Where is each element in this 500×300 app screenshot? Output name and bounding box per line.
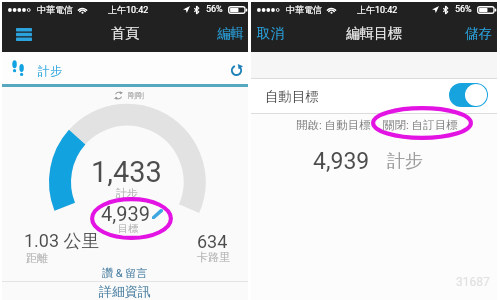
staticText: 計步 xyxy=(38,63,62,78)
staticText: 讚 & 留言 xyxy=(102,266,148,280)
button[interactable]: Auto goal toggle xyxy=(449,83,488,107)
staticText: 開啟: 自動目標 xyxy=(296,118,371,132)
staticText: 中華電信 xyxy=(37,4,73,15)
staticText: 634 xyxy=(197,231,228,252)
button[interactable]: Menu xyxy=(9,19,39,49)
staticText: 中華電信 xyxy=(286,4,322,15)
staticText: 取消 xyxy=(257,25,284,42)
button[interactable]: 儲存 xyxy=(459,18,497,49)
staticText: 56% xyxy=(206,4,223,15)
staticText: 56% xyxy=(455,4,472,15)
staticText: 自動目標 xyxy=(265,88,319,105)
staticText: 計步 xyxy=(116,186,138,200)
button[interactable]: 讚 & 留言 xyxy=(2,263,248,283)
staticText: 距離 xyxy=(26,251,48,265)
button[interactable]: 取消 xyxy=(251,18,290,49)
staticText: 1.03 公里 xyxy=(24,230,100,253)
staticText: 儲存 xyxy=(465,25,492,42)
button[interactable]: 詳細資訊 xyxy=(2,282,248,300)
staticText: 剛剛 xyxy=(128,90,144,100)
staticText: 卡路里 xyxy=(197,250,230,264)
staticText: 上午10:42 xyxy=(357,4,398,15)
staticText: 目標 xyxy=(118,222,138,235)
staticText: 關閉: 自訂目標 xyxy=(383,118,458,132)
button[interactable]: 自動目標 xyxy=(251,79,497,113)
staticText: 上午10:42 xyxy=(108,4,149,15)
staticText: 詳細資訊 xyxy=(99,283,151,299)
staticText: 編輯目標 xyxy=(346,25,402,43)
staticText: 計步 xyxy=(387,150,423,173)
staticText: 編輯 xyxy=(217,25,244,42)
staticText: 4,939 xyxy=(101,202,150,225)
staticText: 1,433 xyxy=(91,155,162,189)
staticText: 31687 xyxy=(456,275,490,289)
button[interactable]: 編輯 xyxy=(211,18,248,49)
staticText: 首頁 xyxy=(111,25,139,43)
staticText: 4,939 xyxy=(313,148,370,175)
button[interactable]: Refresh xyxy=(224,58,248,82)
